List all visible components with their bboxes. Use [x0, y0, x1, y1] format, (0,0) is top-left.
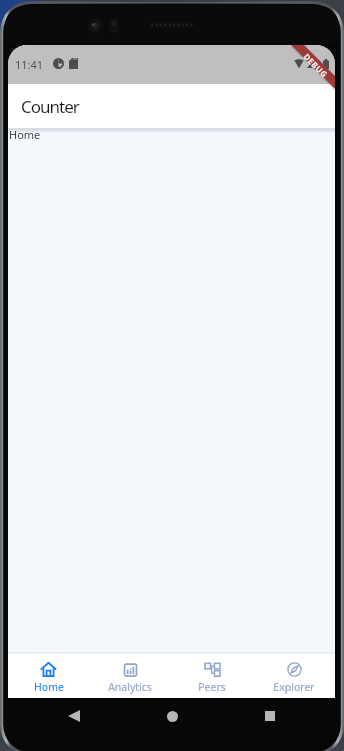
staticText: Analytics — [108, 680, 152, 694]
button[interactable]: Analytics — [89, 660, 171, 692]
staticText: Home — [9, 127, 41, 142]
button[interactable]: Back — [62, 704, 86, 728]
button[interactable]: Home — [8, 660, 89, 692]
button[interactable]: Peers — [171, 660, 253, 692]
staticText: Home — [34, 680, 64, 694]
staticText: DEBUG — [301, 51, 330, 80]
button[interactable]: Explorer — [253, 660, 335, 692]
staticText: Counter — [21, 95, 79, 118]
button[interactable]: Recent apps — [258, 704, 282, 728]
staticText: 11:41 — [15, 57, 44, 72]
staticText: Peers — [198, 680, 226, 694]
staticText: Explorer — [273, 680, 315, 694]
button[interactable]: Home — [160, 704, 184, 728]
